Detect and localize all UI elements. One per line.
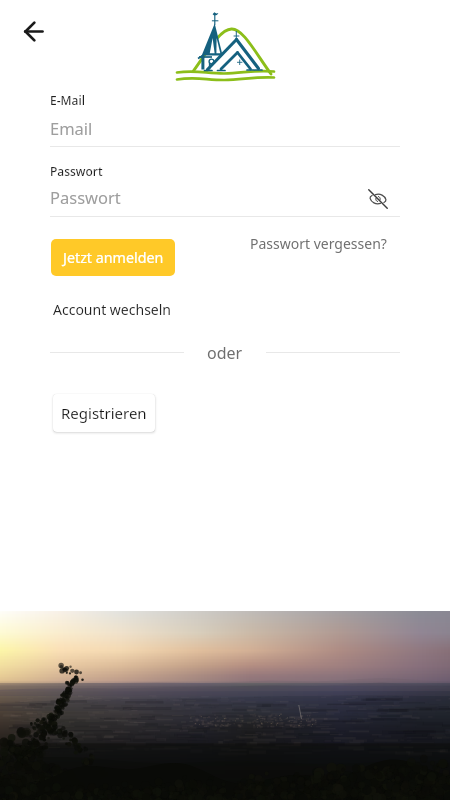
staticText: oder — [207, 342, 243, 364]
staticText: Jetzt anmelden — [63, 248, 164, 267]
button[interactable]: Back — [9, 7, 57, 55]
button[interactable]: Jetzt anmelden — [51, 239, 175, 276]
staticText: Passwort vergessen? — [250, 234, 387, 253]
button[interactable]: Passwort vergessen? — [248, 232, 389, 255]
staticText: Passwort — [50, 163, 103, 179]
button[interactable]: Registrieren — [53, 394, 155, 432]
button[interactable]: Account wechseln — [51, 298, 173, 321]
staticText: Email — [50, 117, 93, 139]
staticText: Account wechseln — [53, 300, 171, 319]
staticText: E-Mail — [50, 92, 85, 108]
staticText: Passwort — [50, 186, 121, 208]
staticText: Registrieren — [61, 403, 147, 423]
button[interactable]: Show password — [364, 185, 392, 213]
